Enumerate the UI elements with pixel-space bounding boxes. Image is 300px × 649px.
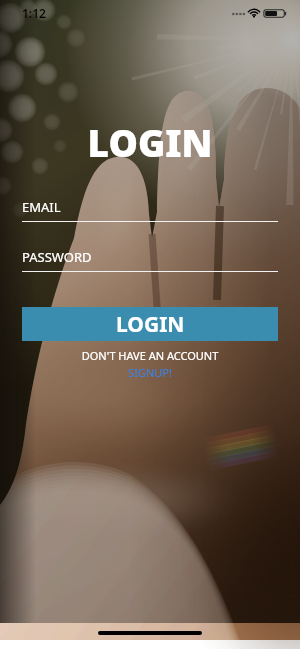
button[interactable]: PASSWORD (22, 248, 278, 272)
button[interactable]: EMAIL (22, 198, 278, 222)
staticText: LOGIN (116, 310, 185, 339)
staticText: 1:12 (22, 5, 46, 21)
button[interactable]: LOGIN (22, 307, 278, 341)
staticText: EMAIL (22, 198, 61, 216)
staticText: LOGIN (0, 117, 300, 167)
staticText: DON'T HAVE AN ACCOUNT (0, 348, 300, 363)
staticText: PASSWORD (22, 248, 92, 266)
button[interactable]: SIGNUP! (128, 365, 172, 380)
